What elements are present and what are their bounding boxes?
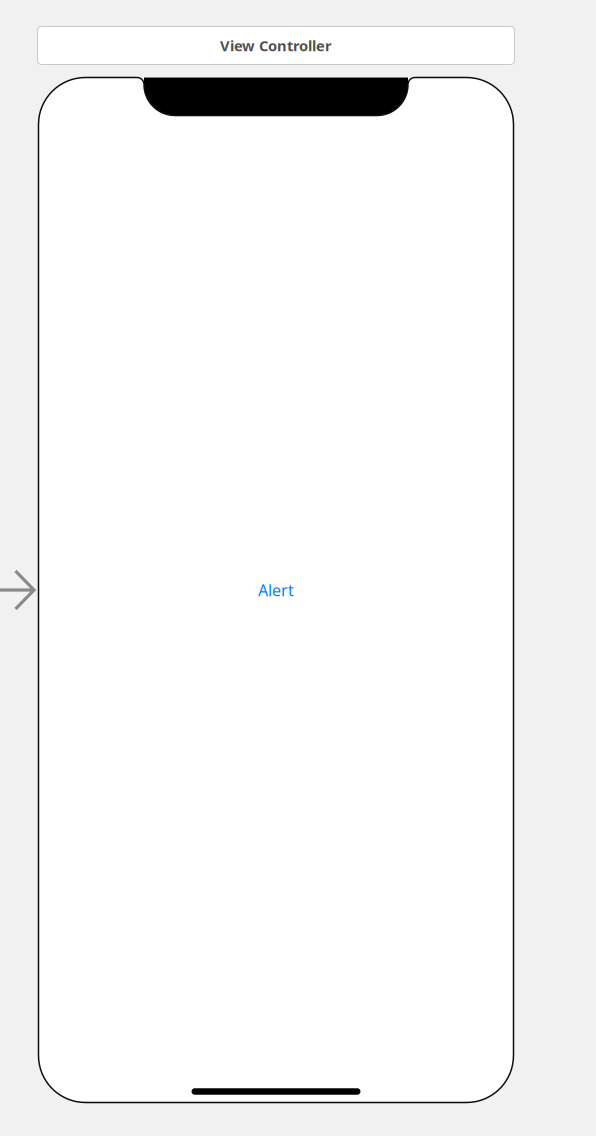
button[interactable]: View Controller <box>37 26 514 64</box>
staticText: Alert <box>258 579 294 601</box>
staticText: View Controller <box>220 36 332 55</box>
button[interactable]: Alert <box>246 573 306 607</box>
